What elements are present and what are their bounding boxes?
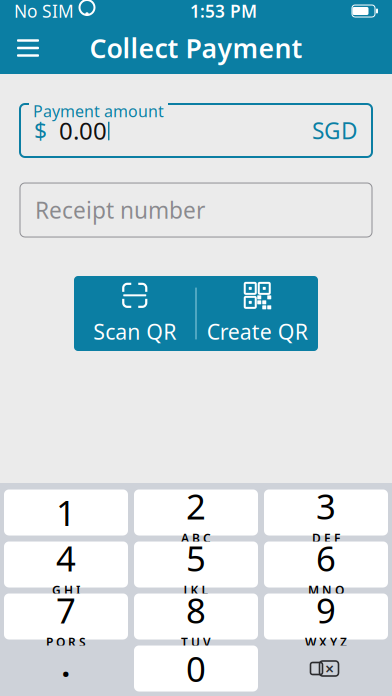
staticText: 1 — [56, 489, 76, 535]
staticText: × — [325, 658, 334, 679]
staticText: Receipt number — [35, 195, 205, 225]
button[interactable]: Menu — [4, 26, 52, 70]
staticText: Scan QR — [93, 317, 176, 346]
button[interactable]: 3 — [264, 489, 388, 535]
staticText: 2 — [186, 483, 206, 529]
staticText: Create QR — [207, 317, 308, 346]
button[interactable]: 9 — [264, 593, 388, 639]
button[interactable]: Create QR — [197, 276, 318, 351]
staticText: D E F — [312, 530, 340, 546]
staticText: 5 — [186, 535, 206, 581]
staticText: 9 — [316, 587, 336, 633]
button[interactable]: 7 — [4, 593, 128, 639]
staticText: W X Y Z — [305, 634, 347, 650]
button[interactable]: 0 — [134, 645, 258, 691]
staticText: No SIM — [14, 0, 74, 22]
button[interactable]: 2 — [134, 489, 258, 535]
staticText: SGD — [312, 115, 358, 145]
staticText: 4 — [56, 535, 76, 581]
button[interactable]: 8 — [134, 593, 258, 639]
button[interactable]: Decimal point — [4, 645, 128, 691]
staticText: 8 — [186, 587, 206, 633]
staticText: Collect Payment — [89, 30, 302, 66]
staticText: 1:53 PM — [190, 0, 257, 22]
button[interactable]: Delete — [264, 645, 388, 691]
button[interactable]: 4 — [4, 541, 128, 587]
button[interactable]: Scan QR — [74, 276, 195, 351]
staticText: T U V — [181, 634, 211, 650]
button[interactable]: Receipt number — [20, 183, 372, 237]
staticText: G H I — [52, 582, 80, 598]
staticText: 7 — [56, 587, 76, 633]
staticText: 6 — [316, 535, 336, 581]
button[interactable]: 5 — [134, 541, 258, 587]
staticText: P Q R S — [46, 634, 86, 650]
staticText: 3 — [316, 483, 336, 529]
button[interactable]: 1 — [4, 489, 128, 535]
staticText: Payment amount — [33, 100, 164, 122]
staticText: M N O — [308, 582, 344, 598]
staticText: . — [61, 640, 71, 686]
staticText: 0.00 — [59, 115, 107, 146]
staticText: 0 — [186, 645, 206, 691]
staticText: $ — [34, 115, 47, 145]
staticText: J K L — [183, 582, 208, 598]
button[interactable]: 6 — [264, 541, 388, 587]
staticText: A B C — [181, 530, 211, 546]
